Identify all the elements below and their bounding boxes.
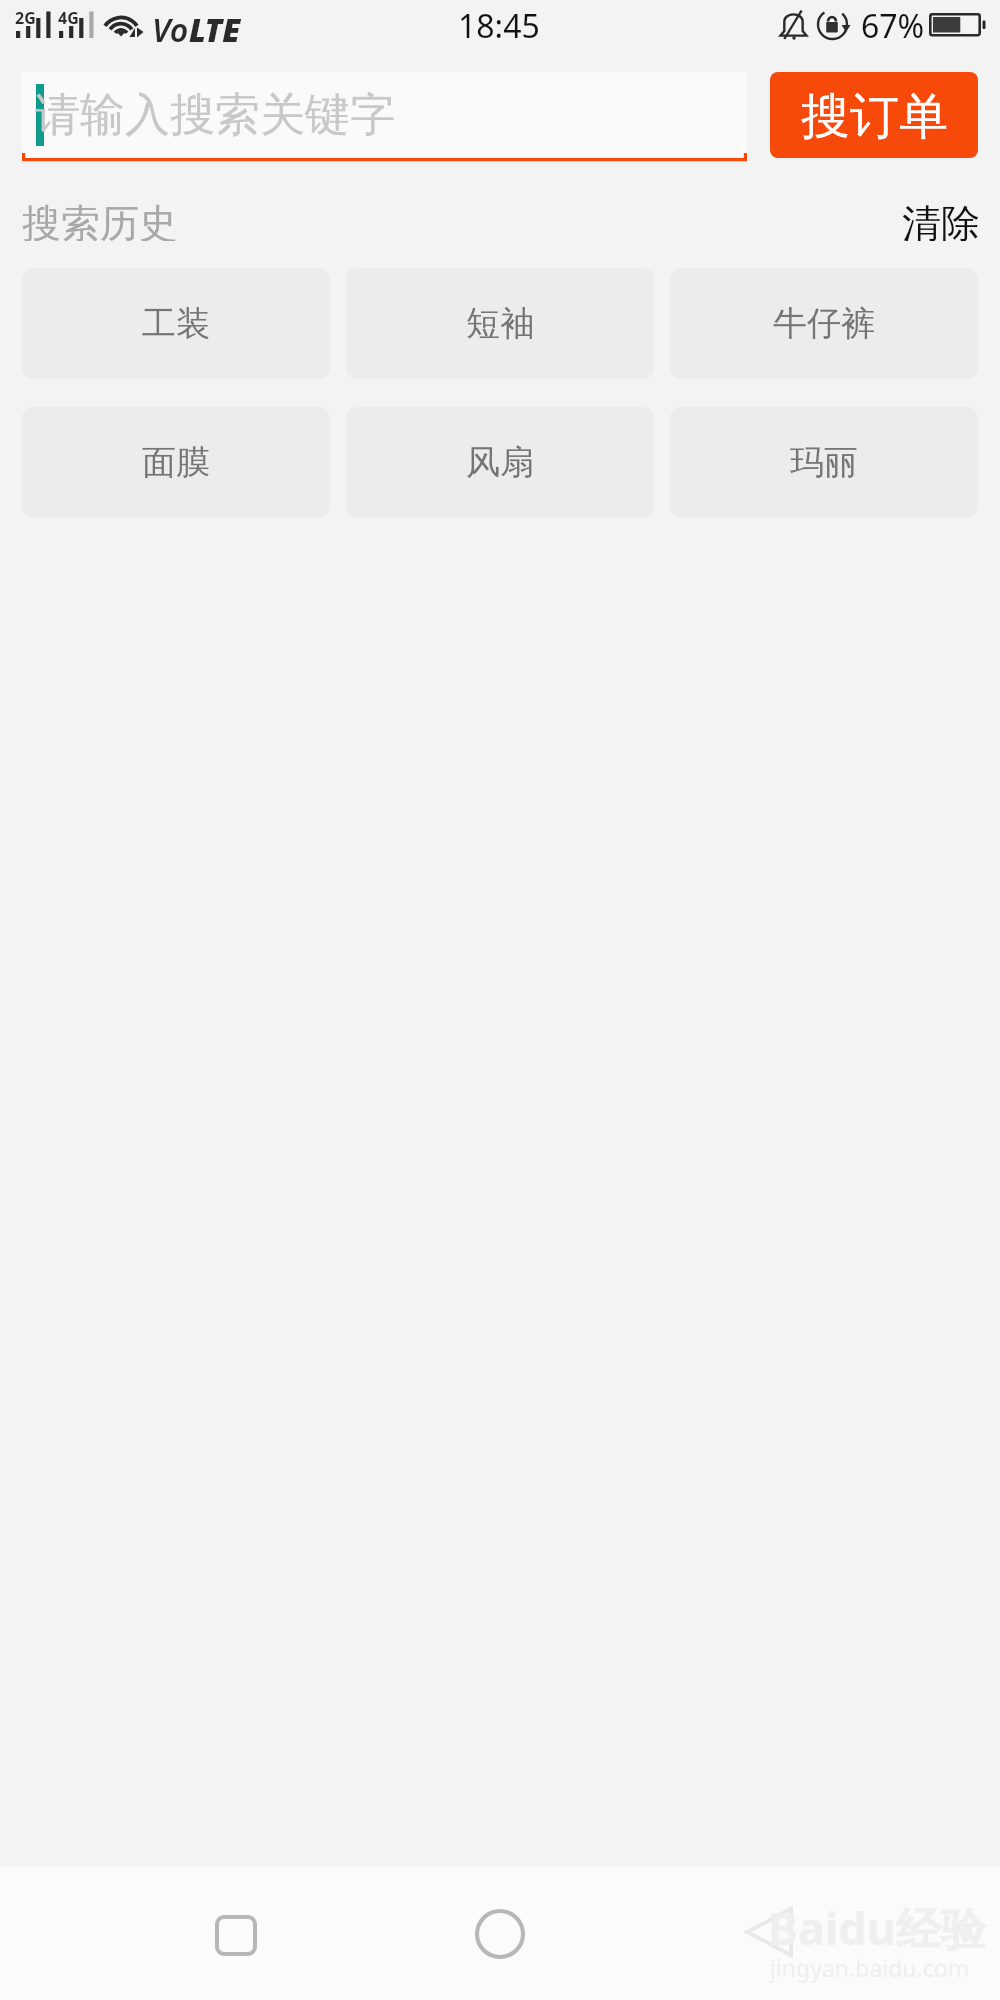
staticText: 搜订单 bbox=[801, 86, 948, 148]
staticText: 67% bbox=[861, 4, 925, 48]
staticText: jingyan.baidu.com bbox=[770, 1952, 970, 1983]
staticText: 搜索历史 bbox=[22, 199, 178, 241]
staticText: 请输入搜索关键字 bbox=[35, 87, 395, 144]
button[interactable]: 清除 bbox=[902, 199, 980, 241]
button[interactable]: 玛丽 bbox=[670, 407, 978, 518]
staticText: 玛丽 bbox=[790, 441, 858, 484]
button[interactable]: 面膜 bbox=[22, 407, 330, 518]
staticText: 风扇 bbox=[466, 441, 534, 484]
staticText: Baidu经验 bbox=[768, 1897, 987, 1958]
button[interactable]: 工装 bbox=[22, 268, 330, 379]
staticText: 面膜 bbox=[142, 441, 210, 484]
button[interactable]: Home bbox=[450, 1884, 550, 1984]
staticText: 清除 bbox=[902, 199, 980, 241]
staticText: 短袖 bbox=[466, 302, 534, 345]
staticText: 2G bbox=[15, 7, 36, 29]
staticText: Vo bbox=[152, 8, 189, 52]
staticText: 4G bbox=[58, 7, 79, 29]
staticText: LTE bbox=[189, 8, 241, 52]
button[interactable]: 风扇 bbox=[346, 407, 654, 518]
button[interactable]: 短袖 bbox=[346, 268, 654, 379]
staticText: 工装 bbox=[142, 302, 210, 345]
staticText: 18:45 bbox=[458, 4, 540, 48]
button[interactable]: 牛仔裤 bbox=[670, 268, 978, 379]
button[interactable]: Recent apps bbox=[186, 1885, 286, 1985]
button[interactable]: 请输入搜索关键字 bbox=[22, 72, 747, 162]
button[interactable]: 搜订单 bbox=[770, 72, 978, 158]
staticText: 牛仔裤 bbox=[773, 302, 875, 345]
